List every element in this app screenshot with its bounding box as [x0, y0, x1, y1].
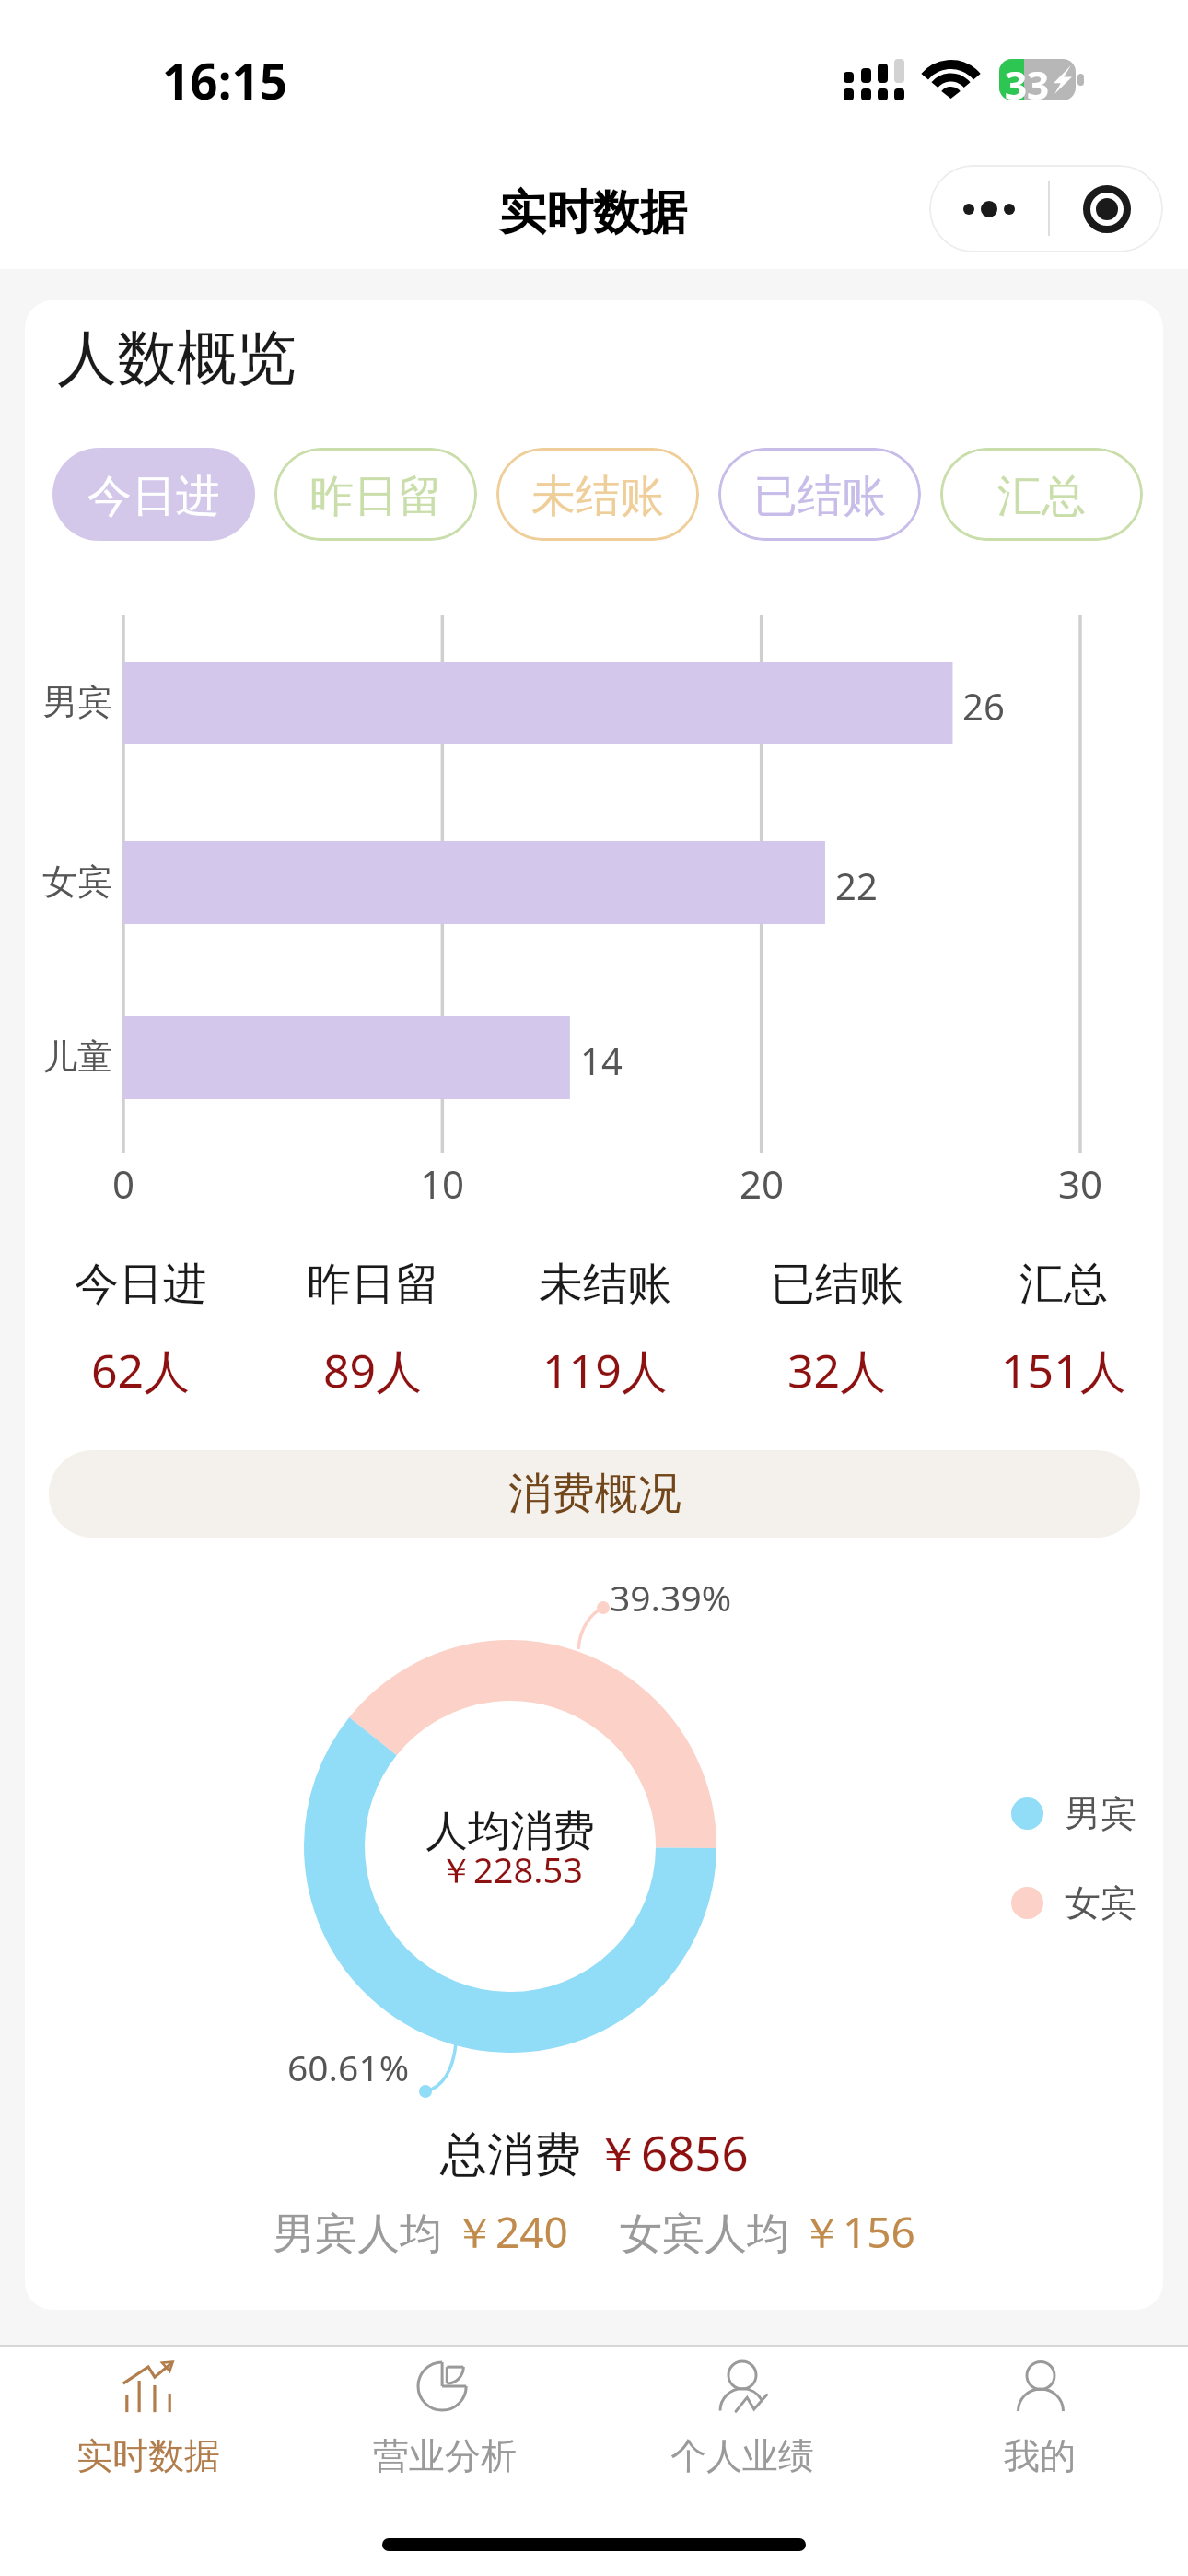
- staticText: 消费概况: [508, 1467, 681, 1521]
- button[interactable]: 已结账: [718, 448, 921, 541]
- staticText: 已结账: [753, 469, 886, 524]
- staticText: 女宾: [42, 860, 112, 904]
- other: Personal performance: [716, 2359, 769, 2413]
- staticText: ￥156: [800, 2203, 915, 2261]
- staticText: 男宾人均: [273, 2203, 453, 2261]
- other: Business analysis: [418, 2359, 472, 2413]
- staticText: 22: [835, 861, 878, 910]
- staticText: 未结账: [531, 469, 664, 524]
- button[interactable]: 汇总: [940, 448, 1143, 541]
- staticText: 实时数据: [499, 183, 687, 242]
- staticText: 个人业绩: [670, 2433, 814, 2478]
- staticText: 总消费: [440, 2120, 594, 2184]
- button[interactable]: 未结账: [467, 1257, 743, 1401]
- staticText: 33: [1005, 58, 1050, 111]
- staticText: 儿童: [42, 1035, 112, 1079]
- staticText: 未结账: [539, 1257, 671, 1312]
- button[interactable]: 汇总: [926, 1257, 1163, 1401]
- staticText: 人数概览: [57, 321, 297, 396]
- staticText: 10: [420, 1157, 465, 1210]
- staticText: 人均消费: [425, 1805, 595, 1858]
- staticText: 16:15: [162, 47, 288, 113]
- staticText: 30: [1058, 1157, 1103, 1210]
- button[interactable]: 消费概况: [49, 1450, 1140, 1538]
- staticText: 151人: [1001, 1339, 1126, 1401]
- staticText: 89人: [323, 1339, 423, 1401]
- staticText: 男宾: [1065, 1791, 1136, 1836]
- button[interactable]: Real-time data: [0, 2347, 297, 2478]
- staticText: 今日进: [87, 469, 220, 524]
- staticText: 20: [740, 1157, 785, 1210]
- staticText: 昨日留: [307, 1257, 439, 1312]
- staticText: 0: [112, 1157, 135, 1210]
- button[interactable]: 未结账: [496, 448, 699, 541]
- staticText: 14: [580, 1036, 623, 1085]
- staticText: 39.39%: [610, 1573, 732, 1622]
- button[interactable]: 已结账: [699, 1257, 975, 1401]
- staticText: 62人: [91, 1339, 191, 1401]
- staticText: ￥228.53: [438, 1845, 583, 1893]
- staticText: 32人: [787, 1339, 887, 1401]
- staticText: 今日进: [75, 1257, 207, 1312]
- other: Mine: [1013, 2359, 1066, 2413]
- button[interactable]: Personal performance: [593, 2347, 891, 2478]
- button[interactable]: 今日进: [52, 448, 255, 541]
- staticText: 119人: [542, 1339, 668, 1401]
- button[interactable]: More options and close mini program: [929, 165, 1163, 252]
- staticText: 昨日留: [309, 469, 442, 524]
- button[interactable]: 昨日留: [274, 448, 477, 541]
- staticText: 女宾人均: [620, 2203, 800, 2261]
- staticText: 汇总: [1019, 1257, 1108, 1312]
- button[interactable]: Mine: [891, 2347, 1188, 2478]
- button[interactable]: Business analysis: [297, 2347, 593, 2478]
- staticText: 60.61%: [287, 2043, 410, 2091]
- staticText: 我的: [1004, 2433, 1076, 2478]
- staticText: 女宾: [1065, 1880, 1136, 1926]
- staticText: 26: [962, 681, 1005, 731]
- other: Real-time data: [122, 2359, 175, 2413]
- button[interactable]: 昨日留: [235, 1257, 511, 1401]
- staticText: 实时数据: [76, 2433, 220, 2478]
- button[interactable]: 今日进: [25, 1257, 279, 1401]
- staticText: 汇总: [997, 469, 1086, 524]
- staticText: 男宾: [42, 680, 112, 724]
- staticText: 营业分析: [373, 2433, 517, 2478]
- staticText: ￥6856: [594, 2120, 749, 2184]
- staticText: 已结账: [771, 1257, 903, 1312]
- staticText: ￥240: [453, 2203, 568, 2261]
